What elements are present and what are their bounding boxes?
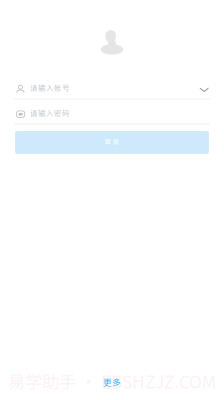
staticText: 易学助手 · EBSHZJZ.COM — [8, 368, 216, 394]
staticText: 请 输 入 密 码 — [30, 108, 69, 118]
button[interactable]: 登 录 — [15, 131, 209, 154]
button[interactable]: 请 输 入 帐 号 — [16, 75, 208, 100]
button[interactable]: 更多 — [101, 376, 123, 388]
staticText: 更多 — [103, 376, 121, 388]
staticText: 请 输 入 帐 号 — [30, 82, 69, 93]
button[interactable]: 请 输 入 密 码 — [16, 100, 208, 125]
staticText: 登 录 — [104, 136, 119, 146]
